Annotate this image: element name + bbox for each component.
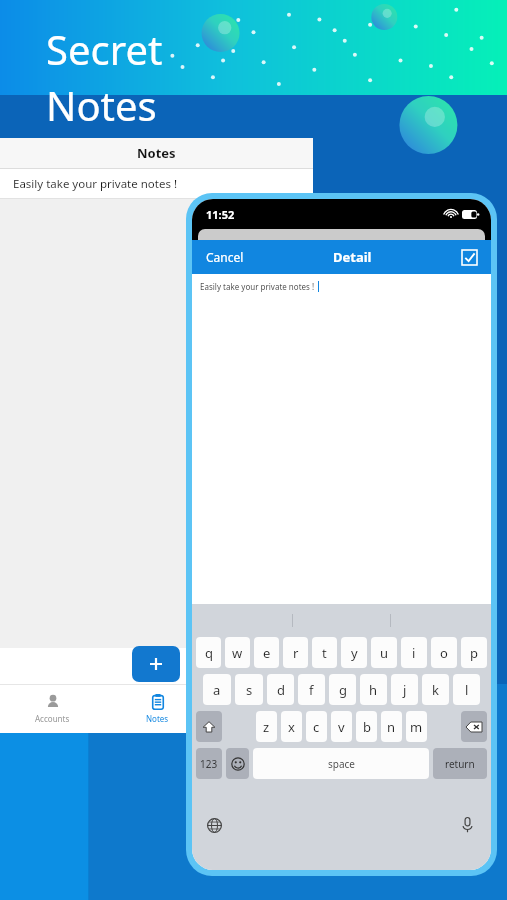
staticText: Secret	[46, 22, 163, 76]
button[interactable]: c	[306, 711, 327, 742]
button[interactable]: y	[341, 637, 367, 668]
staticText: v	[338, 718, 345, 736]
button[interactable]: f	[298, 674, 325, 705]
staticText: space	[328, 757, 355, 771]
button[interactable]: m	[406, 711, 427, 742]
button[interactable]: g	[329, 674, 356, 705]
staticText: c	[313, 718, 320, 736]
staticText: b	[363, 718, 371, 736]
staticText: n	[387, 718, 396, 736]
button[interactable]: e	[254, 637, 279, 668]
button[interactable]: Backspace	[461, 711, 487, 742]
staticText: 11:52	[206, 207, 235, 222]
button[interactable]: d	[267, 674, 294, 705]
staticText: Notes	[46, 78, 157, 132]
button[interactable]: o	[431, 637, 457, 668]
staticText: a	[213, 681, 221, 699]
staticText: e	[263, 644, 271, 662]
button[interactable]: Cancel	[204, 247, 246, 267]
button[interactable]: Dictate	[457, 815, 477, 835]
button[interactable]: l	[453, 674, 480, 705]
staticText: Easily take your private notes !	[200, 281, 315, 292]
button[interactable]: p	[461, 637, 487, 668]
staticText: t	[322, 644, 327, 662]
button[interactable]: Save	[459, 247, 479, 267]
staticText: h	[369, 681, 378, 699]
staticText: 123	[200, 757, 218, 771]
button[interactable]: Notes	[105, 685, 209, 733]
staticText: Detail	[333, 248, 372, 266]
button[interactable]: b	[356, 711, 377, 742]
staticText: j	[403, 681, 407, 699]
button[interactable]: h	[360, 674, 387, 705]
button[interactable]: Easily take your private notes !	[0, 169, 313, 198]
staticText: Cancel	[206, 249, 244, 265]
button[interactable]: a	[203, 674, 231, 705]
staticText: return	[445, 757, 475, 771]
staticText: z	[263, 718, 270, 736]
button[interactable]: s	[235, 674, 263, 705]
button[interactable]: r	[283, 637, 308, 668]
staticText: Notes	[146, 713, 169, 724]
staticText: w	[232, 644, 243, 662]
staticText: u	[380, 644, 389, 662]
button[interactable]: return	[433, 748, 487, 779]
staticText: Easily take your private notes !	[13, 176, 178, 192]
button[interactable]: t	[312, 637, 337, 668]
staticText: f	[309, 681, 314, 699]
button[interactable]: Add note	[132, 646, 180, 682]
staticText: r	[293, 644, 299, 662]
staticText: y	[351, 644, 358, 662]
button[interactable]: x	[281, 711, 302, 742]
button[interactable]: k	[422, 674, 449, 705]
staticText: Notes	[137, 144, 176, 162]
staticText: s	[246, 681, 253, 699]
button[interactable]: v	[331, 711, 352, 742]
button[interactable]: Shift	[196, 711, 222, 742]
staticText: p	[470, 644, 478, 662]
button[interactable]: Accounts	[0, 685, 105, 733]
button[interactable]: space	[253, 748, 429, 779]
staticText: i	[412, 644, 416, 662]
button[interactable]: u	[371, 637, 397, 668]
staticText: m	[410, 718, 423, 736]
button[interactable]: n	[381, 711, 402, 742]
staticText: k	[432, 681, 439, 699]
staticText: x	[288, 718, 295, 736]
button[interactable]: i	[401, 637, 427, 668]
button[interactable]: w	[225, 637, 250, 668]
button[interactable]: 123	[196, 748, 222, 779]
staticText: d	[277, 681, 285, 699]
button[interactable]: z	[256, 711, 277, 742]
staticText: g	[339, 681, 347, 699]
staticText: Accounts	[35, 713, 70, 724]
button[interactable]: q	[196, 637, 221, 668]
staticText: l	[465, 681, 469, 699]
staticText: o	[440, 644, 448, 662]
button[interactable]: Change keyboard	[204, 815, 224, 835]
button[interactable]: j	[391, 674, 418, 705]
button[interactable]: Emoji	[226, 748, 249, 779]
staticText: q	[205, 644, 213, 662]
